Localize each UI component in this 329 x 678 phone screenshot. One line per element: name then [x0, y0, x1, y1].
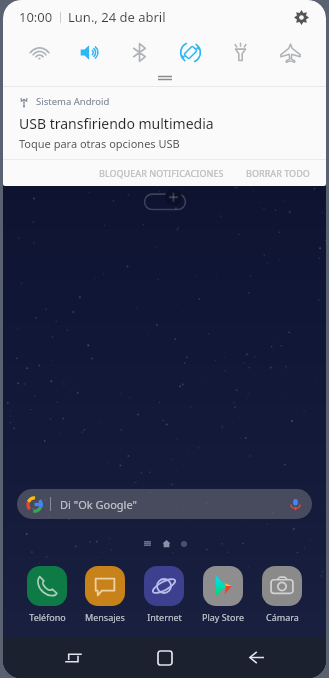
staticText: Lun., 24 de abril: [68, 8, 166, 26]
staticText: Toque para otras opciones USB: [19, 136, 180, 151]
button[interactable]: Airplane mode: [270, 34, 310, 70]
button[interactable]: Home: [143, 637, 187, 678]
staticText: Teléfono: [29, 611, 66, 623]
staticText: USB transfiriendo multimedia: [19, 114, 214, 133]
button[interactable]: Recent apps: [51, 637, 95, 678]
staticText: Mensajes: [85, 611, 125, 623]
staticText: 10:00: [19, 8, 53, 26]
staticText: Internet: [147, 611, 182, 623]
button[interactable]: Wi-Fi: [19, 34, 59, 70]
staticText: Play Store: [202, 611, 244, 623]
button[interactable]: Back: [234, 637, 278, 678]
staticText: BORRAR TODO: [246, 167, 310, 179]
button[interactable]: Auto rotate: [170, 34, 210, 70]
staticText: Di "Ok Google": [60, 497, 138, 512]
button[interactable]: BORRAR TODO: [238, 163, 318, 183]
button[interactable]: [181, 541, 187, 547]
button[interactable]: Expand quick settings: [3, 70, 326, 86]
button[interactable]: Flashlight: [220, 34, 260, 70]
button[interactable]: Sistema Android: [3, 87, 326, 151]
button[interactable]: Mensajes: [83, 564, 127, 625]
staticText: Sistema Android: [36, 95, 110, 108]
button[interactable]: [143, 539, 152, 548]
button[interactable]: Play Store: [200, 564, 246, 625]
button[interactable]: Teléfono: [25, 564, 69, 625]
staticText: BLOQUEAR NOTIFICACIONES: [99, 167, 224, 179]
button[interactable]: Settings: [288, 4, 314, 30]
button[interactable]: Cámara: [260, 564, 304, 625]
button[interactable]: [162, 539, 171, 548]
button[interactable]: BLOQUEAR NOTIFICACIONES: [91, 163, 232, 183]
staticText: Cámara: [266, 611, 299, 623]
button[interactable]: Internet: [142, 564, 186, 625]
button[interactable]: Bluetooth: [119, 34, 159, 70]
button[interactable]: Di "Ok Google": [17, 489, 312, 519]
button[interactable]: Sound: [69, 34, 109, 70]
